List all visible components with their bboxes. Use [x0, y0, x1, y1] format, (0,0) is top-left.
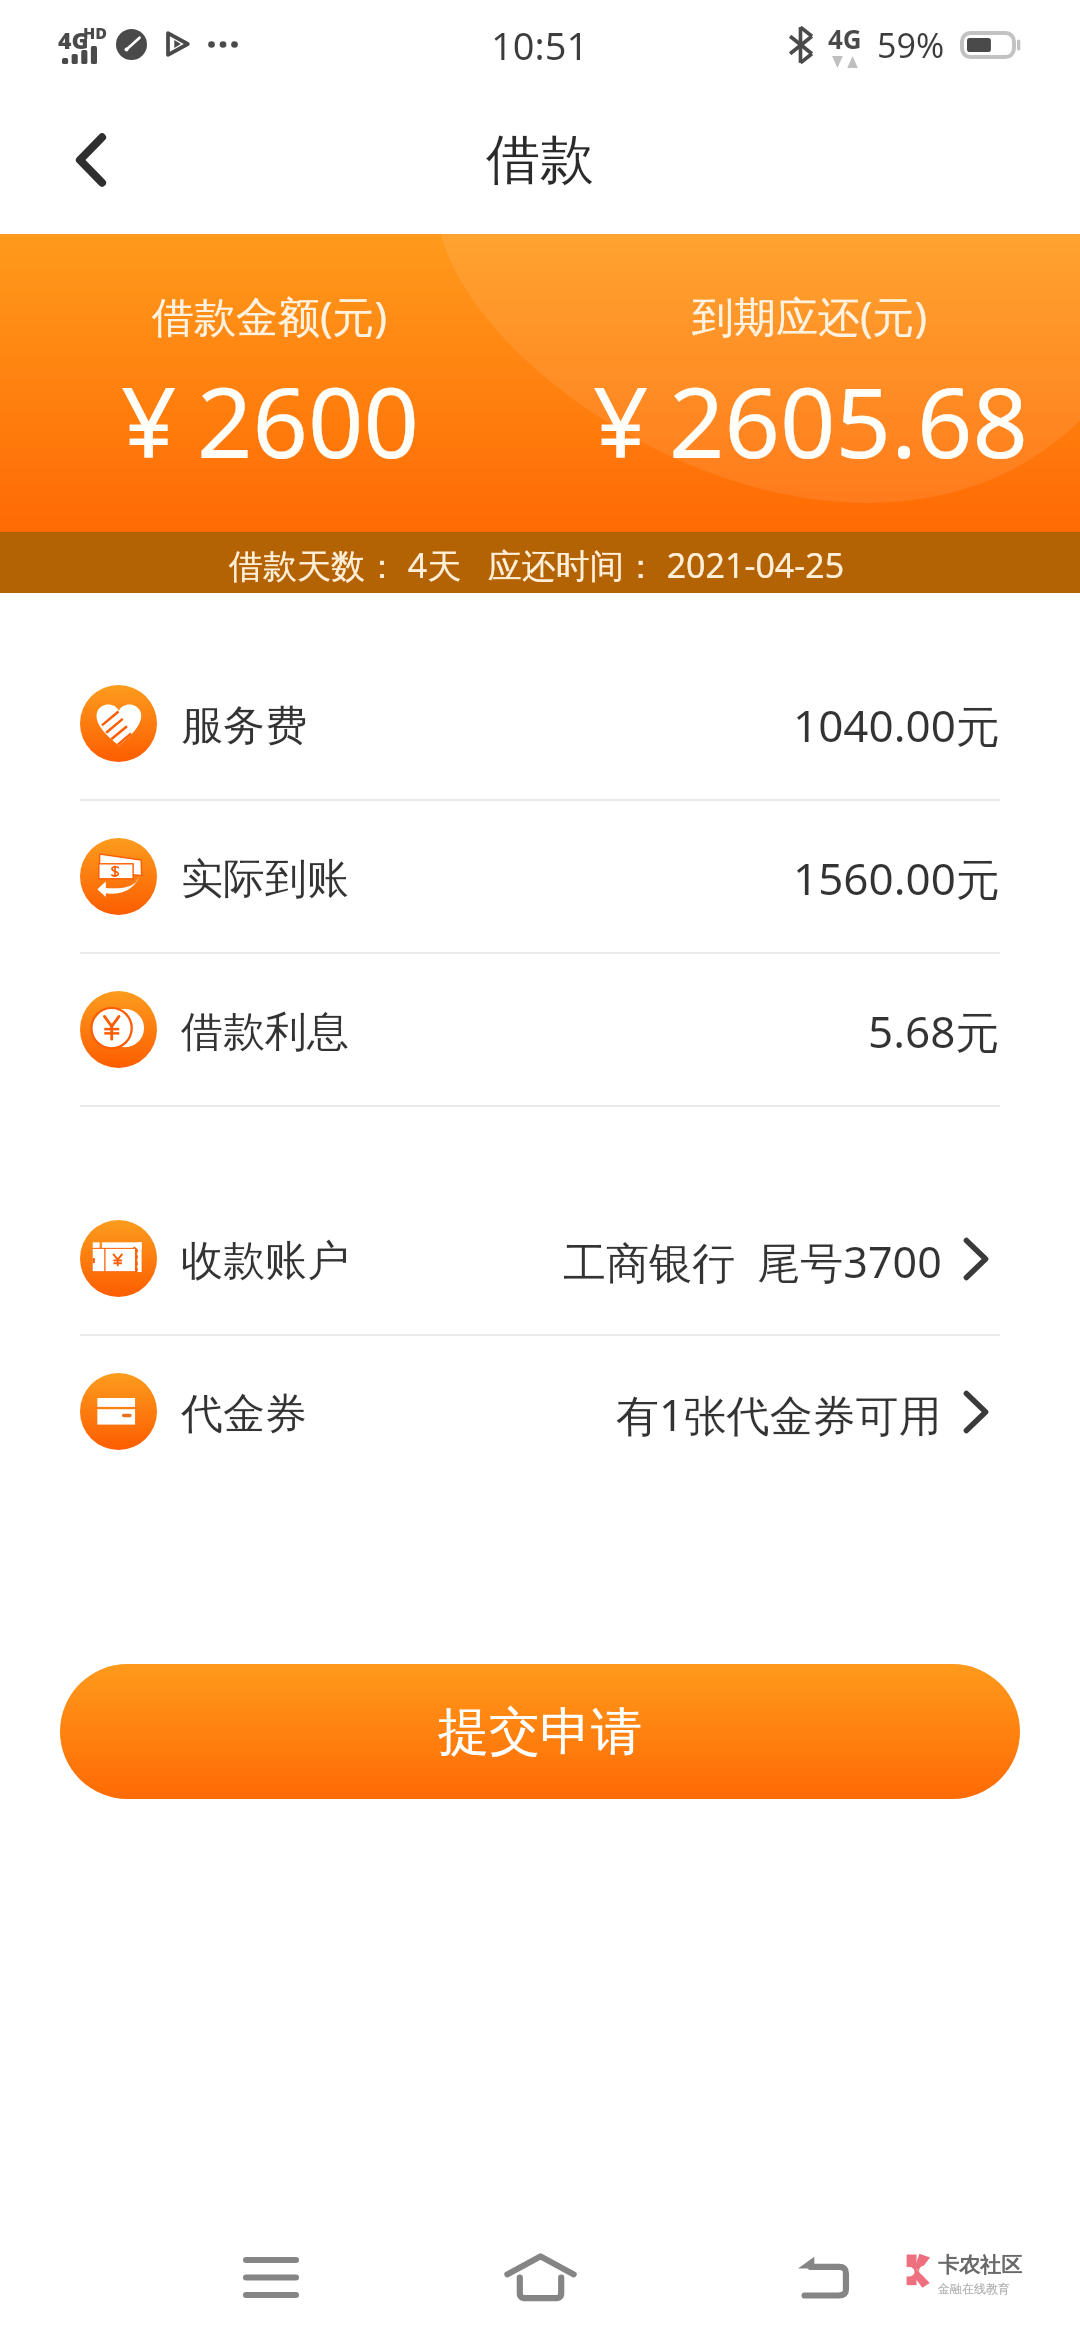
staticText: 到期应还(元) [692, 287, 928, 344]
staticText: 借款金额(元) [152, 287, 388, 344]
button[interactable]: Back [45, 114, 137, 206]
staticText: 代金券 [181, 1388, 307, 1441]
staticText: 59% [877, 22, 945, 68]
button[interactable]: Home [480, 2217, 600, 2337]
staticText: 10:51 [491, 19, 589, 71]
staticText: ¥ [121, 354, 177, 486]
staticText: 提交申请 [438, 1700, 642, 1764]
staticText: 5.68元 [868, 1001, 1000, 1061]
staticText: 2605.68 [669, 354, 1028, 486]
staticText: ¥ [593, 354, 649, 486]
staticText: 2600 [197, 354, 419, 486]
button[interactable]: 收款账户 [0, 1183, 1080, 1334]
staticText: 收款账户 [181, 1235, 349, 1288]
staticText: 1560.00元 [793, 848, 1000, 908]
staticText: 借款 [486, 126, 594, 194]
button[interactable]: 提交申请 [60, 1664, 1020, 1799]
staticText: 实际到账 [181, 853, 349, 906]
staticText: HD [83, 22, 108, 44]
staticText: 卡农社区 [938, 2252, 1022, 2278]
staticText: 4G [828, 21, 862, 56]
staticText: 服务费 [181, 700, 307, 753]
button[interactable]: Back [763, 2217, 883, 2337]
staticText: 借款天数： 4天 应还时间： 2021-04-25 [229, 542, 845, 588]
staticText: 金融在线教育 [938, 2281, 1010, 2296]
staticText: 4G [58, 24, 89, 55]
staticText: 借款利息 [181, 1006, 349, 1059]
staticText: 有1张代金券可用 [616, 1385, 942, 1444]
button[interactable]: 服务费 [0, 648, 1080, 799]
staticText: 1040.00元 [793, 695, 1000, 755]
button[interactable]: 实际到账 [0, 801, 1080, 952]
button[interactable]: Recent apps [211, 2217, 331, 2337]
staticText: 工商银行 尾号3700 [563, 1232, 942, 1291]
button[interactable]: 借款利息 [0, 954, 1080, 1105]
button[interactable]: 代金券 [0, 1336, 1080, 1487]
